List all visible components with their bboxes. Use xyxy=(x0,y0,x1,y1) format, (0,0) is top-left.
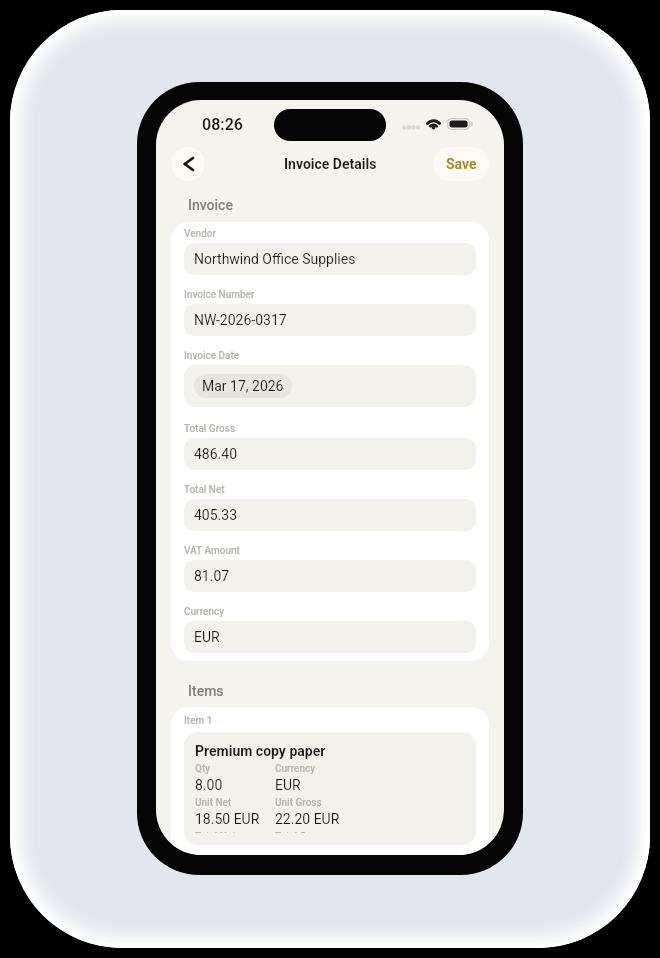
staticText: 486.40 xyxy=(194,446,238,462)
staticText: Currency xyxy=(275,763,316,775)
staticText: 81.07 xyxy=(194,568,230,584)
button[interactable]: Back xyxy=(171,147,205,181)
staticText: Invoice Details xyxy=(284,156,377,172)
staticText: Total Gross xyxy=(184,423,236,435)
staticText: Vendor xyxy=(184,228,217,240)
staticText: Invoice Date xyxy=(184,350,240,362)
button[interactable]: Mar 17, 2026 xyxy=(184,365,476,407)
staticText: VAT Amount xyxy=(184,545,240,557)
staticText: Mar 17, 2026 xyxy=(202,378,284,394)
staticText: Invoice xyxy=(188,197,233,213)
staticText: NW-2026-0317 xyxy=(194,312,287,328)
staticText: EUR xyxy=(194,629,220,645)
staticText: Save xyxy=(446,156,477,172)
button[interactable]: Northwind Office Supplies xyxy=(184,243,476,275)
button[interactable]: Save xyxy=(433,147,489,181)
staticText: Total Net xyxy=(195,831,236,833)
staticText: Qty xyxy=(195,763,211,775)
staticText: 22.20 EUR xyxy=(275,811,340,827)
staticText: EUR xyxy=(275,777,301,793)
staticText: Unit Gross xyxy=(275,797,322,809)
button[interactable]: NW-2026-0317 xyxy=(184,304,476,336)
button[interactable]: 405.33 xyxy=(184,499,476,531)
staticText: Item 1 xyxy=(184,715,213,727)
staticText: Invoice Number xyxy=(184,289,255,301)
staticText: 08:26 xyxy=(202,115,243,134)
staticText: 8.00 xyxy=(195,777,223,793)
button[interactable]: EUR xyxy=(184,621,476,653)
staticText: 405.33 xyxy=(194,507,238,523)
staticText: Currency xyxy=(184,606,225,618)
button[interactable]: 486.40 xyxy=(184,438,476,470)
button[interactable]: 81.07 xyxy=(184,560,476,592)
staticText: Total Net xyxy=(184,484,225,496)
staticText: 18.50 EUR xyxy=(195,811,260,827)
staticText: Northwind Office Supplies xyxy=(194,251,356,267)
staticText: Premium copy paper xyxy=(195,743,326,759)
staticText: Total Gross xyxy=(275,831,327,833)
staticText: Unit Net xyxy=(195,797,232,809)
staticText: Items xyxy=(188,683,224,699)
